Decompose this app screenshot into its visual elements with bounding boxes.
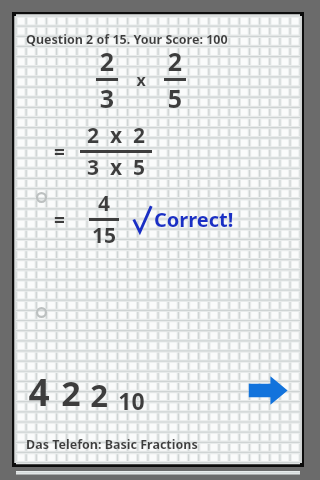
staticText: 3 x 5 [80,153,152,182]
staticText: 4 [89,189,119,218]
staticText: 2 [96,44,118,78]
staticText: x [136,69,146,91]
staticText: 4 [28,366,50,416]
button[interactable]: Question 2 of 15. Your Score: 100 [26,31,228,48]
staticText: 10 [118,385,145,416]
staticText: = [54,207,65,233]
staticText: 2 [61,370,81,416]
button[interactable]: Das Telefon: Basic Fractions [26,436,198,453]
staticText: 2 x 2 [80,121,152,150]
staticText: Correct! [154,206,234,233]
button[interactable]: Next question [244,368,292,412]
staticText: 2 [164,44,186,78]
staticText: 2 [90,374,108,416]
staticText: 5 [164,81,186,115]
staticText: 3 [96,81,118,115]
staticText: 15 [89,221,119,250]
staticText: = [54,139,65,165]
